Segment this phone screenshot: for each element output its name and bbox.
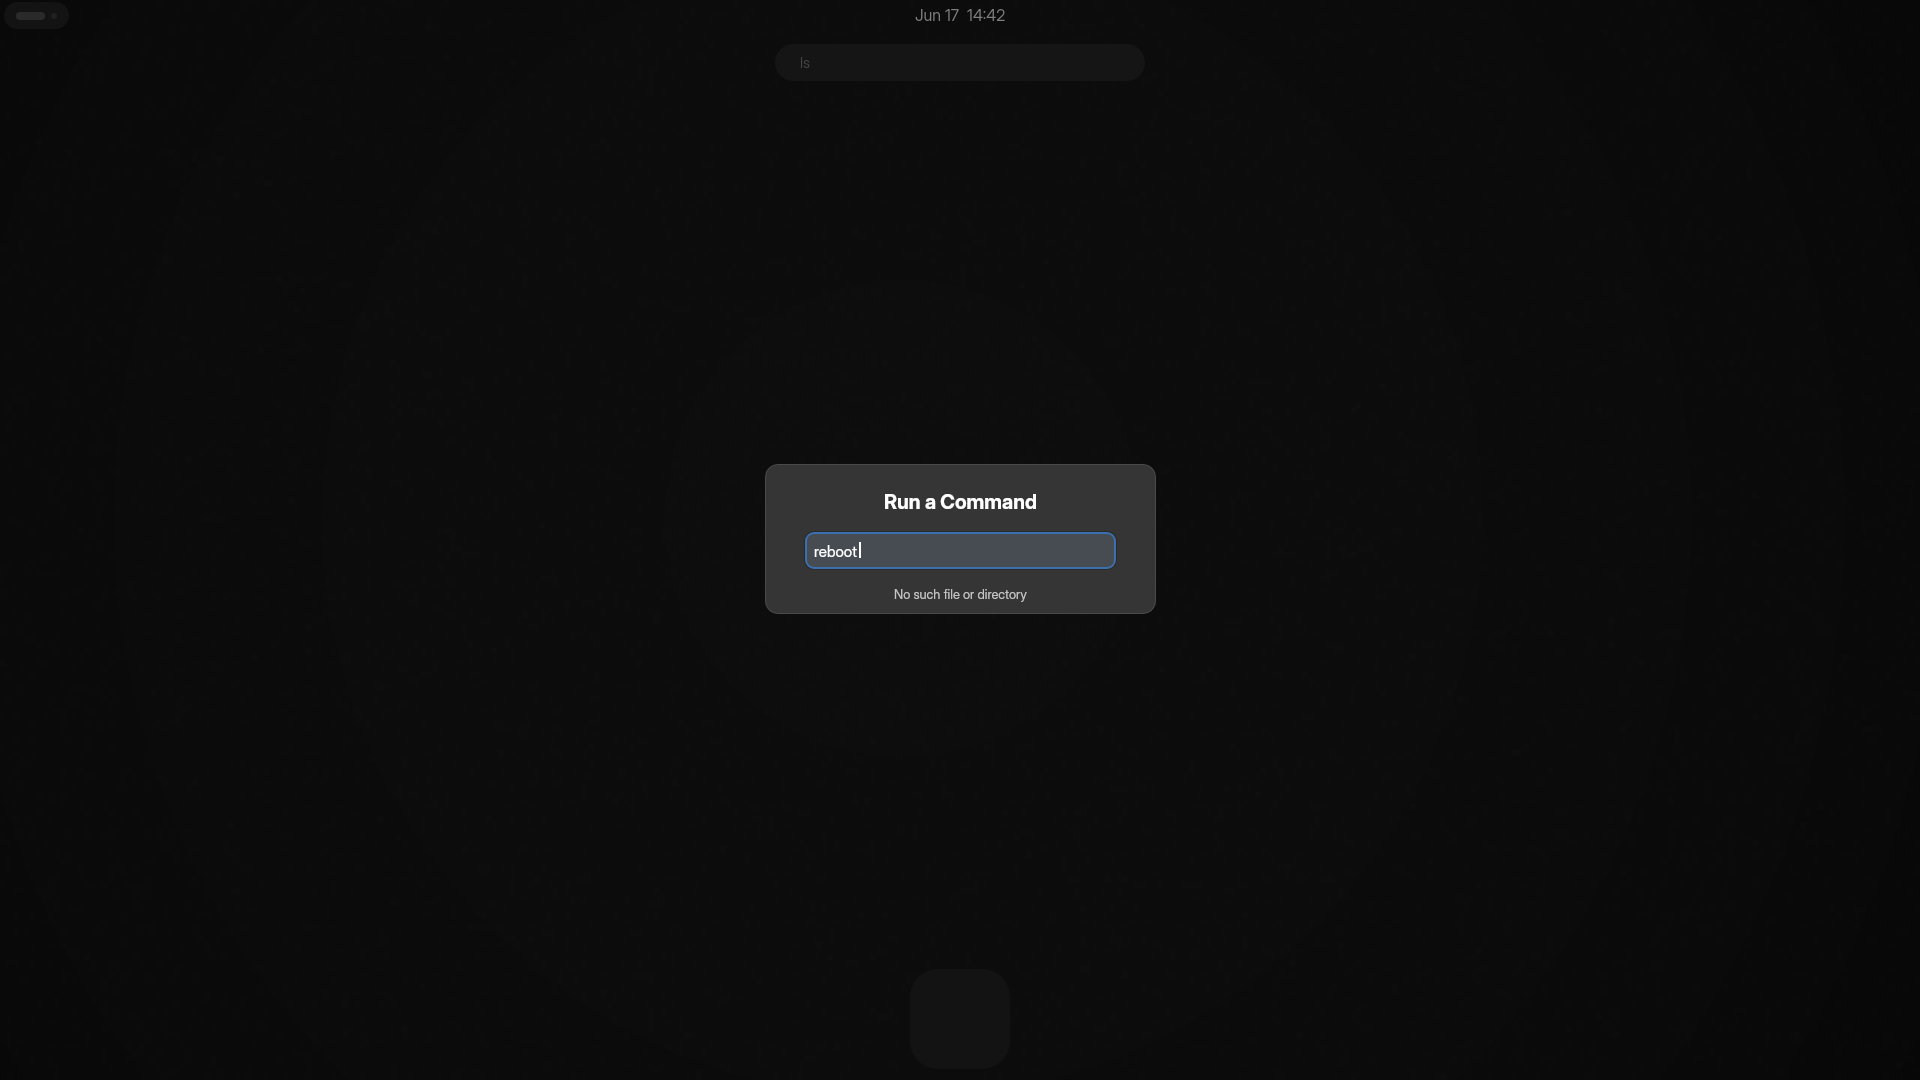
staticText: reboot <box>814 542 857 560</box>
staticText: Jun 17 14:42 <box>915 5 1006 24</box>
button[interactable]: Command entry <box>805 532 1116 569</box>
staticText: Run a Command <box>884 490 1037 514</box>
staticText: ls <box>800 53 811 71</box>
button[interactable]: Workspaces <box>4 2 69 29</box>
staticText: No such file or directory <box>894 587 1027 603</box>
